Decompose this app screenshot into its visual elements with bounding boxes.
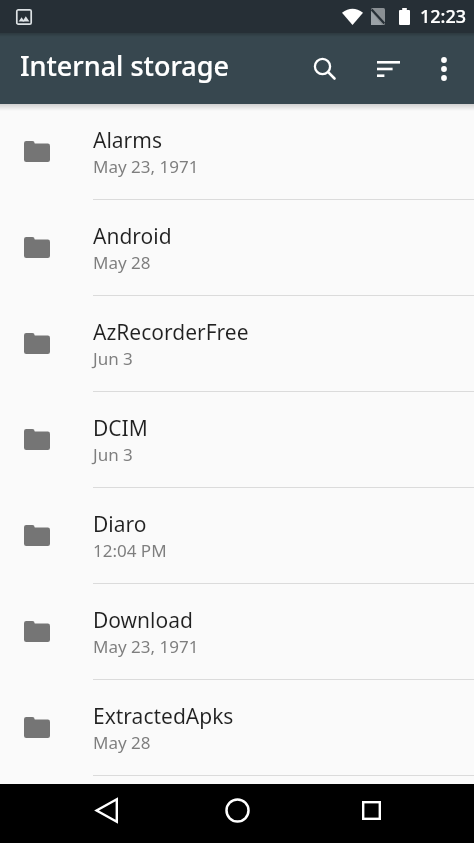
- staticText: DCIM: [93, 414, 148, 443]
- button[interactable]: [353, 33, 423, 104]
- staticText: Alarms: [93, 126, 162, 155]
- button[interactable]: Download: [0, 584, 474, 680]
- staticText: Diaro: [93, 510, 147, 539]
- staticText: AzRecorderFree: [93, 318, 249, 347]
- staticText: Download: [93, 606, 193, 635]
- staticText: Internal storage: [20, 47, 229, 84]
- staticText: May 28: [93, 731, 151, 754]
- button[interactable]: AzRecorderFree: [0, 296, 474, 392]
- button[interactable]: [82, 786, 130, 834]
- staticText: May 28: [93, 251, 151, 274]
- staticText: ExtractedApks: [93, 702, 234, 731]
- button[interactable]: Alarms: [0, 104, 474, 200]
- staticText: May 23, 1971: [93, 635, 199, 658]
- button[interactable]: [213, 786, 261, 834]
- staticText: 12:04 PM: [93, 539, 167, 562]
- staticText: May 23, 1971: [93, 155, 199, 178]
- button[interactable]: Android: [0, 200, 474, 296]
- staticText: Jun 3: [93, 443, 133, 466]
- button[interactable]: ExtractedApks: [0, 680, 474, 776]
- button[interactable]: DCIM: [0, 392, 474, 488]
- button[interactable]: [347, 786, 395, 834]
- button[interactable]: Diaro: [0, 488, 474, 584]
- staticText: Android: [93, 222, 172, 251]
- button[interactable]: [423, 33, 465, 104]
- button[interactable]: [297, 33, 353, 104]
- staticText: Jun 3: [93, 347, 133, 370]
- staticText: 12:23: [420, 4, 467, 29]
